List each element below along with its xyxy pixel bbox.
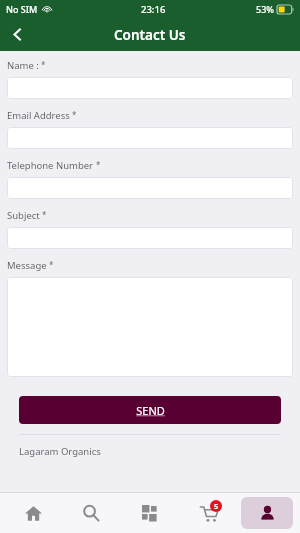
button[interactable]: Home bbox=[7, 497, 59, 529]
staticText: Contact Us bbox=[114, 26, 186, 44]
button[interactable] bbox=[7, 227, 293, 249]
staticText: Telephone Number bbox=[7, 159, 94, 172]
button[interactable]: Profile bbox=[241, 497, 293, 529]
button[interactable] bbox=[7, 77, 293, 99]
staticText: * bbox=[49, 259, 54, 270]
button[interactable] bbox=[7, 127, 293, 149]
staticText: No SIM bbox=[6, 3, 38, 15]
staticText: * bbox=[72, 109, 77, 120]
button[interactable]: Back bbox=[0, 18, 34, 51]
staticText: 23:16 bbox=[141, 3, 166, 16]
staticText: * bbox=[42, 209, 47, 220]
button[interactable] bbox=[7, 277, 293, 377]
staticText: * bbox=[96, 159, 101, 170]
staticText: Lagaram Organics bbox=[19, 445, 101, 458]
button[interactable]: Search bbox=[65, 497, 117, 529]
staticText: Message bbox=[7, 259, 47, 272]
staticText: Subject bbox=[7, 209, 40, 222]
staticText: Name : bbox=[7, 59, 39, 72]
button[interactable]: SEND bbox=[19, 396, 281, 424]
staticText: 53% bbox=[256, 3, 274, 15]
button[interactable]: Categories bbox=[124, 497, 176, 529]
staticText: Email Address bbox=[7, 109, 70, 122]
staticText: SEND bbox=[136, 403, 165, 418]
staticText: 5 bbox=[214, 501, 219, 511]
button[interactable] bbox=[7, 177, 293, 199]
button[interactable]: Cart bbox=[183, 497, 235, 529]
staticText: * bbox=[41, 59, 46, 70]
